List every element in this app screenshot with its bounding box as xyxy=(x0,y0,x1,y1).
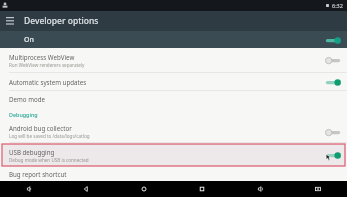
button[interactable]: Switch on xyxy=(324,149,342,161)
staticText: Debugging xyxy=(9,111,38,118)
button[interactable]: Switch off xyxy=(324,54,342,66)
button[interactable]: Switch off xyxy=(324,126,342,138)
button[interactable]: Recent apps xyxy=(173,181,231,197)
staticText: Demo mode xyxy=(9,95,45,103)
button[interactable]: On xyxy=(0,31,347,48)
button[interactable]: Back xyxy=(57,181,115,197)
button[interactable]: Home xyxy=(115,181,173,197)
button[interactable]: Automatic system updates xyxy=(0,73,347,90)
staticText: On xyxy=(24,35,34,45)
staticText: Developer options xyxy=(24,15,99,27)
staticText: Automatic system updates xyxy=(9,78,87,86)
staticText: Bug report shortcut xyxy=(9,170,67,178)
button[interactable]: Volume up xyxy=(231,181,289,197)
button[interactable]: Screenshot xyxy=(289,181,347,197)
button[interactable]: Switch on xyxy=(324,76,342,88)
staticText: Debug mode when USB is connected xyxy=(9,157,89,163)
button[interactable]: Open navigation drawer xyxy=(3,14,17,28)
button[interactable]: Volume down xyxy=(0,181,57,197)
staticText: Run WebView renderers separately xyxy=(9,62,85,68)
button[interactable]: Bug report shortcut xyxy=(0,167,347,180)
button[interactable]: Demo mode xyxy=(0,91,347,107)
button[interactable]: Multiprocess WebView xyxy=(0,48,347,72)
staticText: USB debugging xyxy=(9,148,55,156)
staticText: Log will be saved to /data/logs/catlog xyxy=(9,133,90,139)
staticText: Multiprocess WebView xyxy=(9,53,75,61)
staticText: 6:32 xyxy=(332,2,343,9)
button[interactable]: Switch on xyxy=(324,34,342,46)
staticText: Android bug collector xyxy=(9,124,72,132)
button[interactable]: Android bug collector xyxy=(0,121,347,142)
button[interactable]: USB debugging xyxy=(2,144,345,166)
